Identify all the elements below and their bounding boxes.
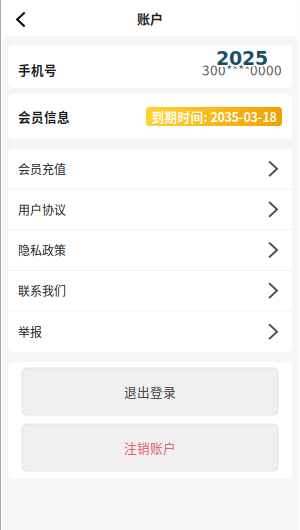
button[interactable]: 用户协议 <box>8 190 292 230</box>
button[interactable]: 注销账户 <box>22 424 278 471</box>
staticText: 2025 <box>214 47 266 69</box>
staticText: 2025 <box>217 46 269 68</box>
staticText: 2025 <box>218 47 270 69</box>
staticText: 300****0000 <box>202 60 282 79</box>
button[interactable]: Back <box>0 0 33 36</box>
button[interactable]: 隐私政策 <box>8 230 292 271</box>
button[interactable]: 退出登录 <box>22 368 278 415</box>
staticText: 2025 <box>215 49 267 71</box>
staticText: 2025 <box>215 46 267 68</box>
staticText: 会员信息 <box>18 107 70 125</box>
staticText: 2025 <box>216 46 268 68</box>
staticText: 会员充值 <box>18 160 66 177</box>
button[interactable]: 举报 <box>8 311 292 352</box>
staticText: 账户 <box>137 8 163 27</box>
staticText: 2025 <box>216 47 268 69</box>
staticText: 2025 <box>216 49 268 71</box>
staticText: 注销账户 <box>124 438 176 457</box>
button[interactable]: 联系我们 <box>8 271 292 311</box>
staticText: 隐私政策 <box>18 241 66 259</box>
staticText: 举报 <box>18 323 42 340</box>
staticText: 退出登录 <box>124 382 176 401</box>
staticText: 到期时间: 2035-03-18 <box>151 107 276 126</box>
staticText: 2025 <box>217 49 269 71</box>
staticText: 联系我们 <box>18 282 66 299</box>
button[interactable]: 会员充值 <box>8 149 292 190</box>
staticText: 手机号 <box>18 60 57 78</box>
staticText: 用户协议 <box>18 201 66 218</box>
